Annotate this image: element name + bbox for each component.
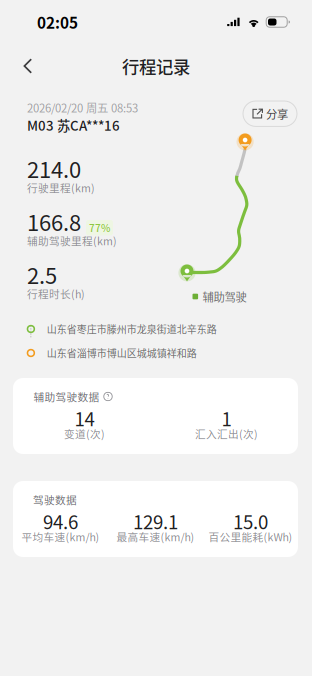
staticText: 分享 xyxy=(266,105,288,122)
staticText: 2.5 xyxy=(27,259,57,290)
staticText: 山东省枣庄市滕州市龙泉街道北辛东路 xyxy=(47,322,217,336)
staticText: 行程记录 xyxy=(122,53,190,79)
staticText: 15.0 xyxy=(233,507,268,534)
staticText: 94.6 xyxy=(43,507,78,534)
staticText: 辅助驾驶数据 xyxy=(33,389,99,404)
staticText: 77% xyxy=(89,220,110,235)
staticText: 2026/02/20 周五 08:53 xyxy=(27,99,138,116)
staticText: 1 xyxy=(221,404,231,431)
staticText: 汇入汇出(次) xyxy=(195,426,258,441)
staticText: 行程时长(h) xyxy=(27,286,85,301)
staticText: M03 苏CA***16 xyxy=(27,115,120,135)
button[interactable]: 分享 xyxy=(243,101,297,126)
staticText: 辅助驾驶 xyxy=(203,288,247,305)
staticText: 变道(次) xyxy=(64,426,105,441)
staticText: 驾驶数据 xyxy=(33,492,77,507)
staticText: 02:05 xyxy=(37,11,78,33)
staticText: 166.8 xyxy=(27,206,81,237)
staticText: 辅助驾驶里程(km) xyxy=(27,233,117,248)
staticText: 百公里能耗(kWh) xyxy=(208,529,292,544)
staticText: 最高车速(km/h) xyxy=(116,529,194,544)
staticText: 行驶里程(km) xyxy=(27,180,95,195)
staticText: 214.0 xyxy=(27,153,81,184)
staticText: 129.1 xyxy=(133,507,178,534)
button[interactable]: 返回 xyxy=(13,49,43,83)
staticText: 山东省淄博市博山区城城镇祥和路 xyxy=(47,346,197,360)
staticText: 平均车速(km/h) xyxy=(21,529,99,544)
staticText: 14 xyxy=(74,404,94,431)
